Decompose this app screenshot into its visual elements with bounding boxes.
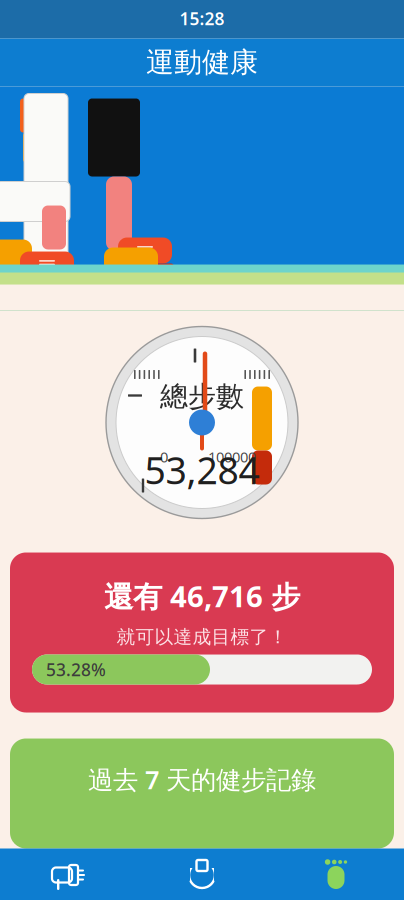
button[interactable]: News [1, 848, 135, 900]
staticText: 100000 [208, 447, 256, 466]
button[interactable]: Steps [269, 848, 403, 900]
staticText: 53.28% [46, 658, 106, 681]
button[interactable]: 還有 46,716 步 [10, 552, 394, 712]
button[interactable]: Favourites [135, 848, 269, 900]
staticText: 運動健康 [146, 45, 258, 80]
staticText: 15:28 [179, 7, 224, 30]
button[interactable]: 過去 7 天的健步記錄 [10, 738, 394, 848]
staticText: 過去 7 天的健步記錄 [88, 762, 316, 796]
staticText: 還有 46,716 步 [104, 576, 300, 615]
staticText: 0 [160, 447, 168, 466]
staticText: 就可以達成目標了！ [116, 625, 287, 648]
staticText: 53,284 [144, 445, 259, 494]
staticText: 總步數 [160, 379, 244, 414]
